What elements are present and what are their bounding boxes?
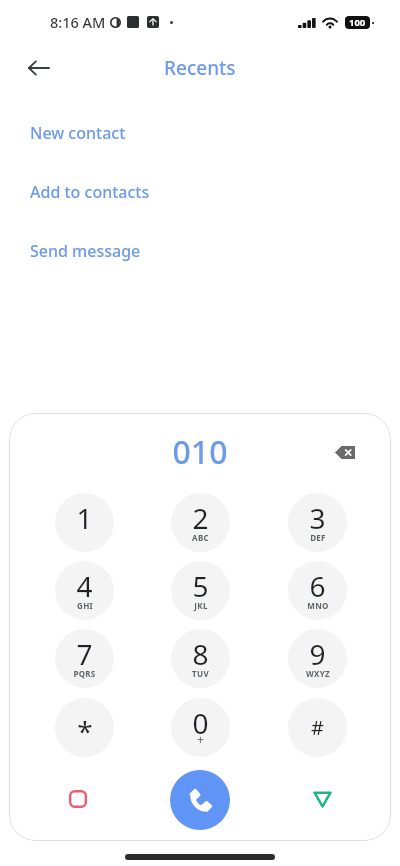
staticText: Recents	[164, 55, 236, 81]
button[interactable]: 1	[55, 493, 114, 552]
button[interactable]: Backspace	[327, 434, 363, 470]
staticText: WXYZ	[306, 668, 330, 679]
button[interactable]: Hide keypad	[298, 775, 346, 823]
staticText: 3	[309, 499, 326, 537]
staticText: 5	[192, 567, 209, 605]
button[interactable]: Stop recording	[54, 775, 102, 823]
button[interactable]: Send message	[0, 230, 400, 272]
button[interactable]: 7	[55, 629, 114, 688]
staticText: +	[197, 731, 204, 747]
staticText: Add to contacts	[30, 181, 150, 203]
button[interactable]: 5	[171, 561, 230, 620]
staticText: 010	[9, 430, 391, 474]
button[interactable]: 9	[288, 629, 347, 688]
staticText: 8:16 AM	[50, 12, 106, 32]
staticText: #	[311, 714, 324, 741]
button[interactable]: 6	[288, 561, 347, 620]
staticText: 4	[76, 567, 93, 605]
button[interactable]: Call	[170, 770, 230, 830]
button[interactable]: 3	[288, 493, 347, 552]
staticText: 0	[192, 704, 209, 742]
staticText: JKL	[194, 600, 208, 611]
staticText: MNO	[307, 600, 329, 611]
staticText: 100	[349, 16, 366, 29]
button[interactable]: #	[288, 698, 347, 757]
staticText: 8	[192, 635, 209, 673]
button[interactable]: 2	[171, 493, 230, 552]
staticText: DEF	[310, 532, 326, 543]
button[interactable]: *	[55, 698, 114, 757]
staticText: *	[77, 712, 93, 750]
button[interactable]: 0	[171, 698, 230, 757]
button[interactable]: 4	[55, 561, 114, 620]
button[interactable]: Add to contacts	[0, 171, 400, 213]
staticText: ABC	[192, 532, 209, 543]
staticText: 7	[76, 635, 93, 673]
staticText: PQRS	[73, 668, 96, 679]
button[interactable]: Back	[20, 49, 57, 86]
staticText: 9	[309, 635, 326, 673]
staticText: TUV	[192, 668, 209, 679]
staticText: GHI	[77, 600, 93, 611]
staticText: 2	[192, 499, 209, 537]
button[interactable]: 8	[171, 629, 230, 688]
staticText: Send message	[30, 240, 141, 262]
button[interactable]: New contact	[0, 112, 400, 154]
staticText: 1	[76, 499, 93, 537]
staticText: New contact	[30, 122, 126, 144]
staticText: 6	[309, 567, 326, 605]
